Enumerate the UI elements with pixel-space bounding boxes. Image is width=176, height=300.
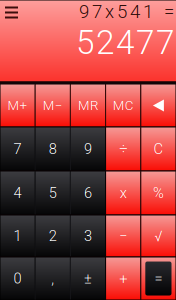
staticText: %	[153, 184, 164, 202]
staticText: 97x541 =	[79, 1, 174, 22]
button[interactable]: C	[141, 127, 175, 170]
button[interactable]: 9	[71, 127, 105, 170]
button[interactable]: 5	[36, 171, 70, 214]
staticText: 2	[49, 227, 57, 245]
button[interactable]: M−	[36, 84, 70, 126]
button[interactable]: 2	[36, 215, 70, 256]
staticText: 9	[84, 140, 92, 158]
button[interactable]: 4	[0, 171, 35, 214]
button[interactable]: =	[141, 257, 175, 299]
button[interactable]: ÷	[106, 127, 140, 170]
button[interactable]: √	[141, 215, 175, 256]
staticText: ±	[84, 270, 92, 287]
button[interactable]: 0	[0, 257, 35, 299]
staticText: =	[154, 270, 162, 287]
button[interactable]: 3	[71, 215, 105, 256]
button[interactable]: 8	[36, 127, 70, 170]
button[interactable]: M+	[0, 84, 35, 126]
staticText: MC	[113, 98, 134, 113]
button[interactable]: 6	[71, 171, 105, 214]
button[interactable]: +	[106, 257, 140, 299]
button[interactable]: −	[106, 215, 140, 256]
button[interactable]: %	[141, 171, 175, 214]
button[interactable]: x	[106, 171, 140, 214]
staticText: M−	[43, 98, 63, 113]
staticText: 5	[49, 184, 57, 202]
staticText: ,	[51, 270, 54, 287]
staticText: 4	[14, 184, 22, 202]
button[interactable]: MC	[106, 84, 140, 126]
staticText: −	[119, 227, 127, 245]
button[interactable]: ±	[71, 257, 105, 299]
button[interactable]: MR	[71, 84, 105, 126]
button[interactable]: Backspace	[141, 84, 175, 126]
staticText: 7	[14, 140, 22, 158]
button[interactable]: 7	[0, 127, 35, 170]
staticText: √	[154, 227, 162, 245]
button[interactable]: ,	[36, 257, 70, 299]
staticText: 1	[14, 227, 22, 245]
staticText: 52477	[76, 23, 174, 62]
staticText: +	[119, 270, 127, 287]
staticText: 8	[49, 140, 57, 158]
staticText: M+	[8, 98, 28, 113]
staticText: 3	[84, 227, 92, 245]
button[interactable]: 1	[0, 215, 35, 256]
staticText: 6	[84, 184, 92, 202]
staticText: C	[153, 140, 163, 158]
button[interactable]: Menu	[0, 0, 26, 21]
staticText: MR	[78, 98, 98, 113]
staticText: x	[120, 184, 127, 202]
staticText: ÷	[119, 140, 127, 158]
staticText: 0	[14, 270, 22, 287]
